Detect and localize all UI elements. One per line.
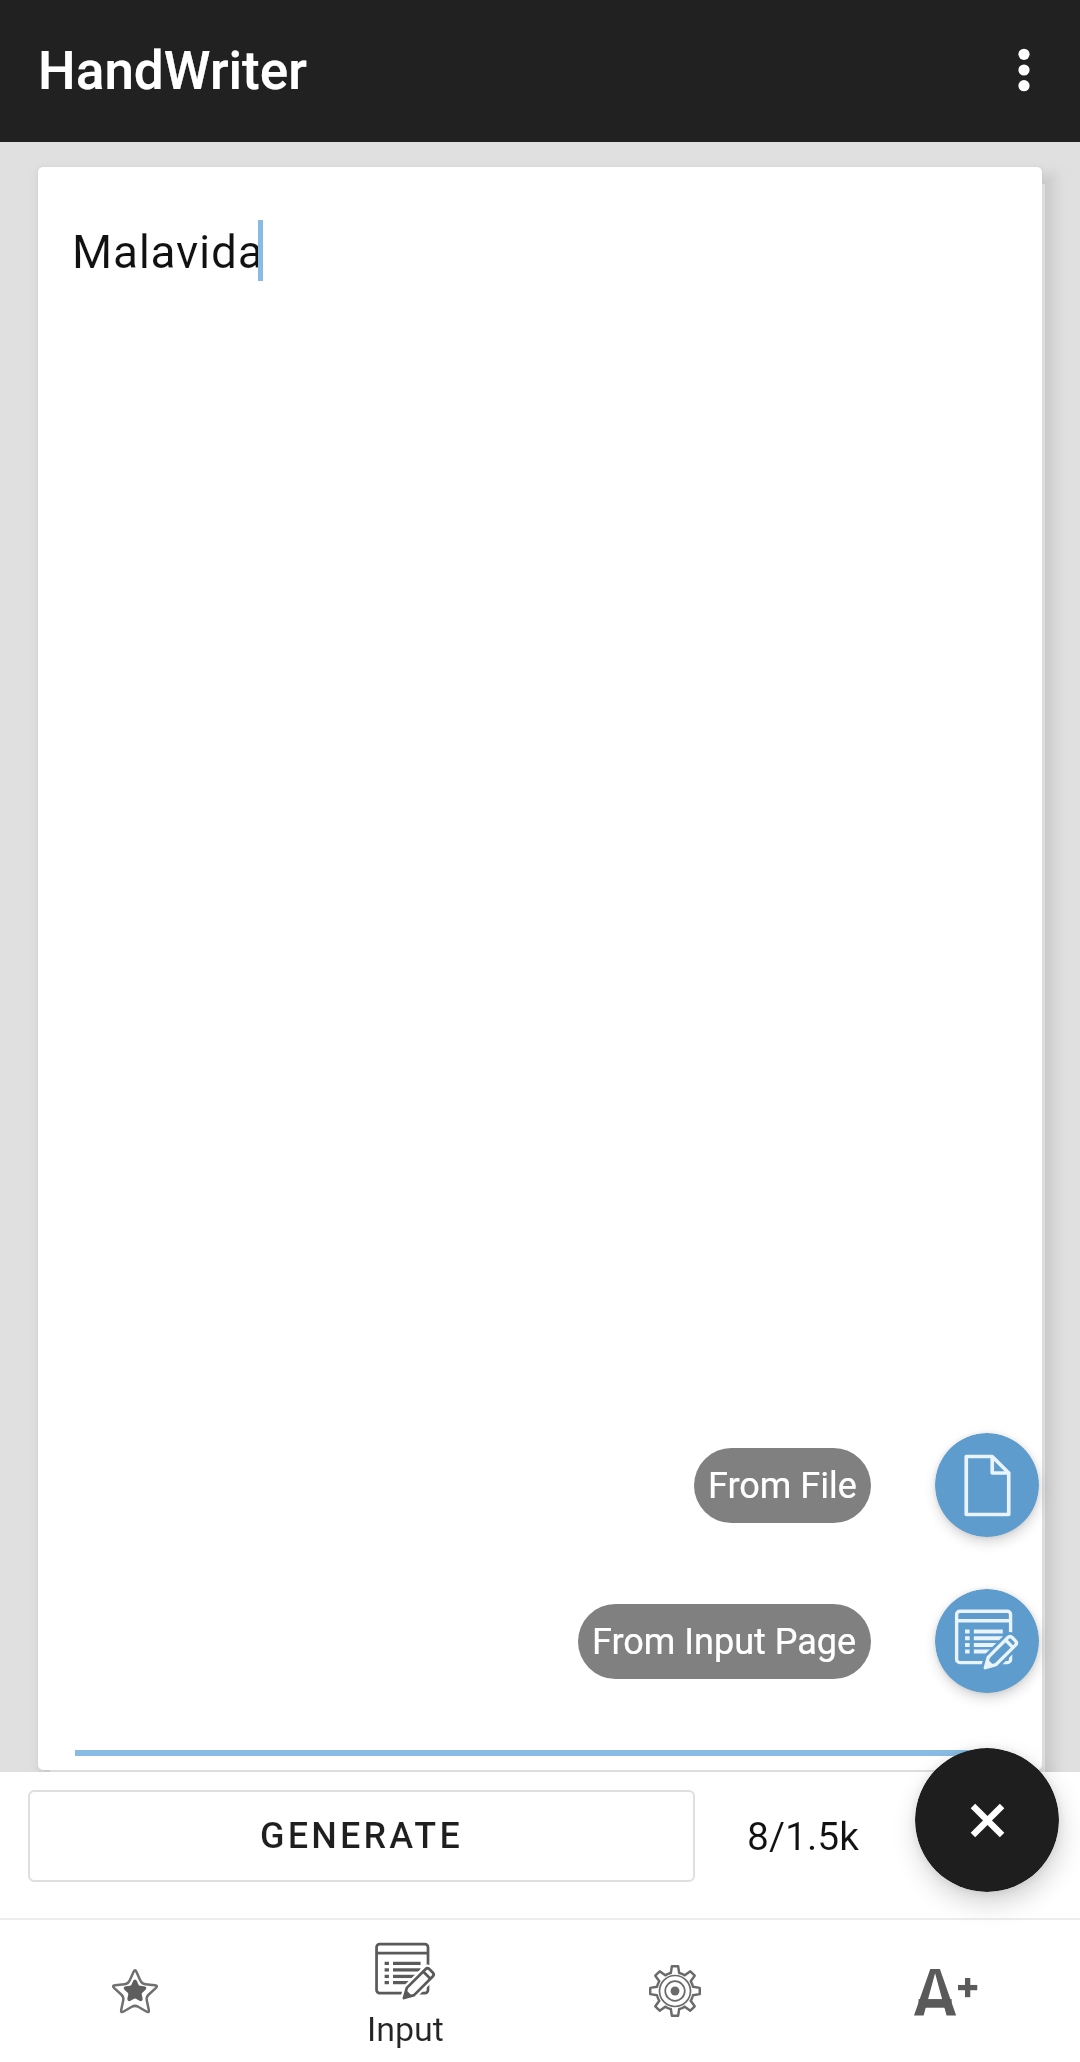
staticText: HandWriter — [38, 40, 307, 102]
button[interactable]: Insert from input page — [935, 1589, 1039, 1693]
button[interactable]: From File — [694, 1448, 871, 1523]
button[interactable]: More options — [969, 15, 1079, 125]
staticText: GENERATE — [260, 1815, 463, 1857]
staticText: Input — [367, 2009, 444, 2049]
button[interactable]: Input — [270, 1920, 540, 2062]
button[interactable]: Close menu — [915, 1748, 1059, 1892]
staticText: From Input Page — [592, 1621, 857, 1663]
button[interactable]: Settings — [540, 1920, 810, 2062]
button[interactable]: From Input Page — [578, 1604, 871, 1679]
button[interactable]: GENERATE — [28, 1790, 695, 1882]
staticText: Malavida — [72, 225, 264, 279]
button[interactable]: Insert from file — [935, 1433, 1039, 1537]
button[interactable]: Font size — [810, 1920, 1080, 2062]
staticText: From File — [708, 1465, 857, 1507]
button[interactable]: Malavida — [38, 167, 1042, 1770]
button[interactable]: Favourites — [0, 1920, 270, 2062]
staticText: 8/1.5k — [747, 1814, 859, 1860]
